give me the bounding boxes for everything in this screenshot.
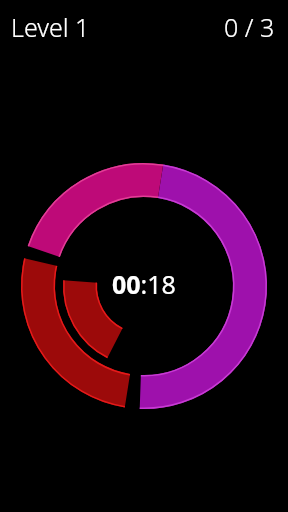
button[interactable]: Level 1: [0, 0, 90, 44]
staticText: 00:18: [112, 267, 176, 301]
button[interactable]: 0 / 3: [224, 0, 288, 44]
button[interactable]: Level progress dial, 18 seconds remainin…: [0, 0, 288, 512]
